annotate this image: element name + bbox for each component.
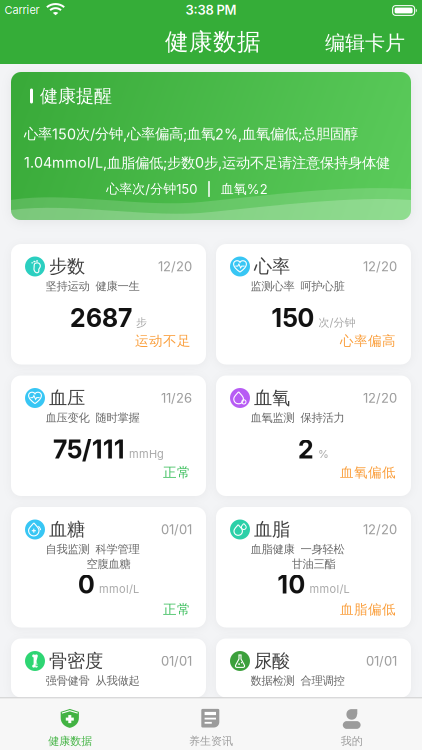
- staticText: 血压变化 随时掌握: [45, 411, 139, 425]
- button[interactable]: 养生资讯: [141, 702, 281, 750]
- staticText: 12/20: [363, 521, 397, 537]
- staticText: 01/01: [161, 653, 192, 669]
- staticText: 75/111: [53, 434, 125, 465]
- staticText: 12/20: [158, 258, 192, 274]
- staticText: 血氧%2: [221, 181, 268, 197]
- staticText: 健康提醒: [40, 85, 112, 107]
- staticText: 150: [271, 303, 314, 333]
- staticText: 健康数据: [165, 27, 261, 57]
- staticText: 血脂偏低: [340, 601, 396, 618]
- staticText: 空腹血糖: [86, 557, 130, 571]
- staticText: 次/分钟: [318, 316, 355, 329]
- staticText: 0: [78, 569, 95, 600]
- staticText: 正常: [163, 464, 191, 481]
- staticText: 编辑卡片: [325, 30, 405, 56]
- staticText: 健康数据: [48, 734, 92, 748]
- button[interactable]: 血脂: [216, 507, 411, 627]
- button[interactable]: 我的: [282, 702, 422, 750]
- button[interactable]: 步数: [11, 244, 206, 364]
- staticText: 2: [298, 434, 314, 465]
- staticText: Carrier: [4, 3, 39, 17]
- staticText: 01/01: [161, 521, 192, 537]
- staticText: 数据检测 合理调控: [250, 674, 344, 688]
- button[interactable]: 骨密度: [11, 638, 206, 697]
- staticText: 血氧监测 保持活力: [250, 411, 344, 425]
- staticText: 步数: [49, 255, 85, 278]
- staticText: 尿酸: [254, 649, 290, 672]
- staticText: 血糖: [49, 518, 85, 541]
- button[interactable]: 血压: [11, 375, 206, 496]
- staticText: 2687: [70, 303, 132, 333]
- staticText: 骨密度: [49, 649, 103, 672]
- staticText: 血氧偏低: [340, 464, 396, 481]
- button[interactable]: 血氧: [216, 375, 411, 496]
- staticText: 12/20: [363, 258, 397, 274]
- staticText: 心率: [254, 255, 290, 278]
- staticText: 步: [136, 316, 147, 329]
- staticText: 运动不足: [135, 332, 191, 349]
- staticText: 12/20: [363, 390, 397, 406]
- staticText: 01/01: [366, 653, 397, 669]
- staticText: %: [318, 447, 329, 461]
- staticText: 自我监测 科学管理: [45, 542, 139, 556]
- staticText: 心率150次/分钟,心率偏高;血氧2%,血氧偏低;总胆固醇: [24, 125, 358, 143]
- staticText: 11/26: [161, 390, 192, 406]
- staticText: 心率次/分钟150: [106, 181, 197, 197]
- staticText: mmol/L: [99, 582, 139, 596]
- staticText: 强骨健骨 从我做起: [45, 674, 139, 688]
- staticText: 血脂: [254, 518, 290, 541]
- button[interactable]: 尿酸: [216, 638, 411, 697]
- staticText: 1.04mmol/L,血脂偏低;步数0步,运动不足请注意保持身体健: [24, 154, 390, 172]
- button[interactable]: 健康提醒: [11, 72, 411, 220]
- button[interactable]: 心率: [216, 244, 411, 364]
- staticText: 血压: [49, 386, 85, 409]
- staticText: 养生资讯: [189, 734, 233, 748]
- staticText: 心率偏高: [340, 332, 396, 349]
- staticText: 10: [277, 569, 305, 600]
- staticText: 坚持运动 健康一生: [45, 279, 139, 293]
- button[interactable]: 血糖: [11, 507, 206, 627]
- staticText: mmol/L: [309, 582, 349, 596]
- staticText: 3:38 PM: [185, 2, 236, 18]
- button[interactable]: 健康数据: [0, 702, 140, 750]
- button[interactable]: 编辑卡片: [305, 28, 405, 58]
- staticText: mmHg: [129, 447, 164, 461]
- staticText: 血脂健康 一身轻松: [250, 542, 344, 556]
- staticText: 血氧: [254, 386, 290, 409]
- staticText: 监测心率 呵护心脏: [250, 279, 344, 293]
- staticText: 正常: [163, 601, 191, 618]
- staticText: 甘油三酯: [291, 557, 335, 571]
- staticText: 我的: [341, 734, 363, 748]
